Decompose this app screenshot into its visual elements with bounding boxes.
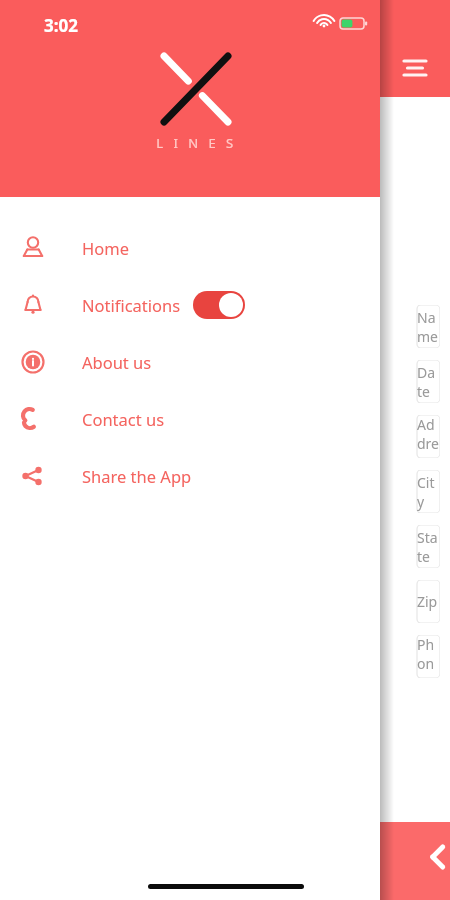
staticText: Phone — [417, 635, 440, 678]
staticText: About us — [82, 351, 152, 373]
button[interactable]: Zip — [404, 580, 440, 623]
button[interactable]: State — [404, 525, 440, 568]
staticText: Notifications — [82, 294, 181, 316]
staticText: City — [417, 473, 440, 511]
staticText: 3:02 — [44, 14, 78, 37]
button[interactable]: Notifications toggle, on — [193, 291, 245, 319]
button[interactable]: City — [404, 470, 440, 513]
staticText: State — [417, 528, 440, 566]
button[interactable]: Contact us — [0, 390, 380, 447]
button[interactable]: Address — [404, 415, 440, 458]
button[interactable]: Home — [0, 219, 380, 276]
staticText: Name — [417, 308, 440, 346]
button[interactable]: Open navigation menu — [398, 55, 432, 83]
staticText: Home — [82, 237, 129, 259]
staticText: Share the App — [82, 465, 192, 487]
button[interactable]: Phone — [404, 635, 440, 678]
button[interactable]: Back — [424, 840, 450, 874]
staticText: L I N E S — [156, 134, 237, 152]
staticText: Date — [417, 363, 440, 401]
button[interactable]: Notifications — [0, 276, 380, 333]
staticText: Zip — [417, 592, 438, 611]
staticText: Contact us — [82, 408, 165, 430]
button[interactable]: Name — [404, 305, 440, 348]
staticText: Address — [417, 415, 440, 458]
button[interactable]: About us — [0, 333, 380, 390]
button[interactable]: Share the App — [0, 447, 380, 504]
button[interactable]: Date — [404, 360, 440, 403]
